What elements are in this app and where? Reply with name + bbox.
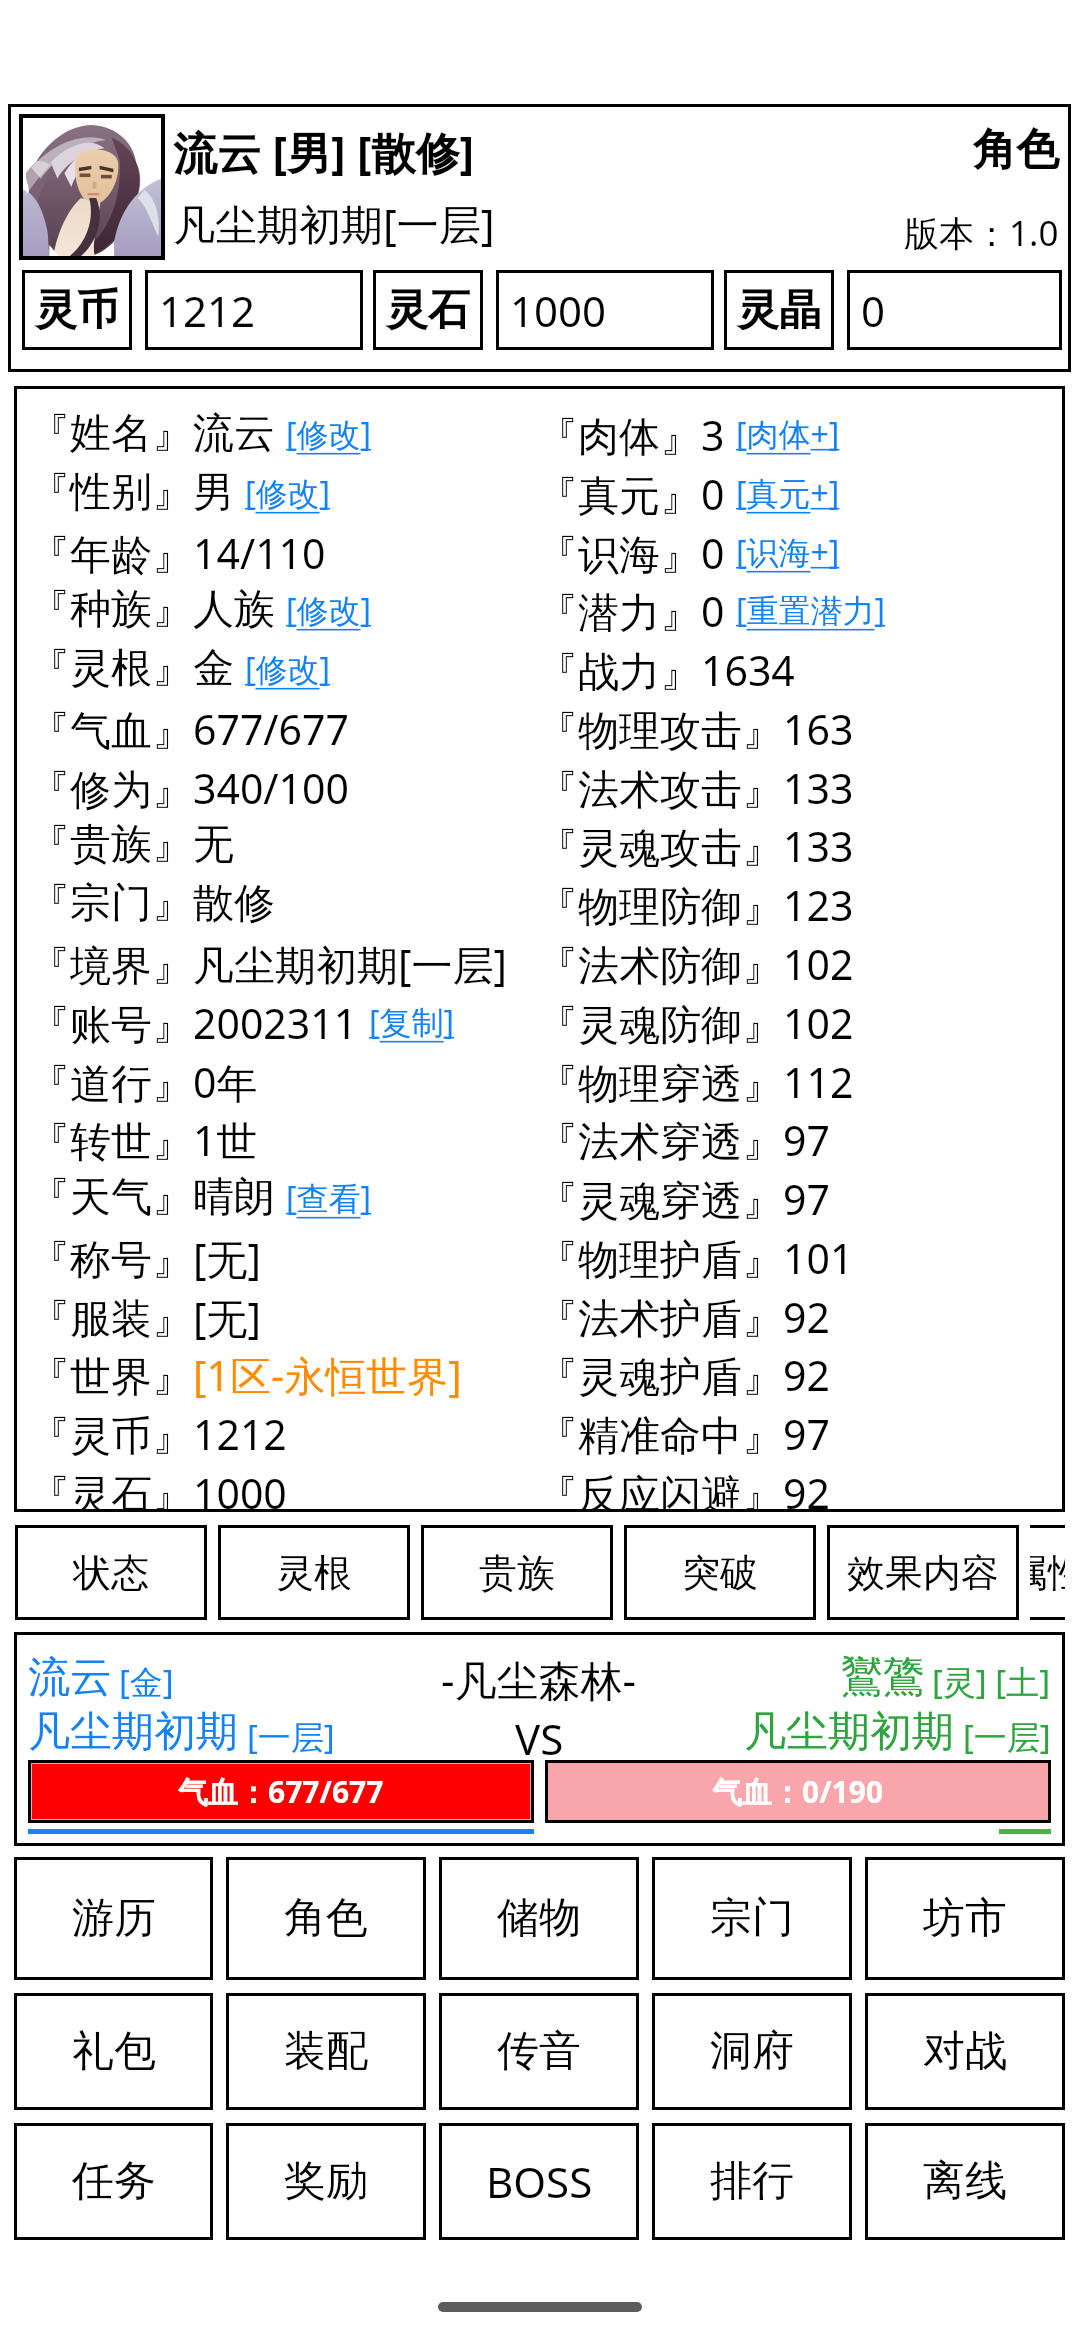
staticText: [一层] [247,1714,335,1759]
button[interactable]: [修改] [245,647,331,691]
staticText: 『物理穿透』112 [537,1054,854,1108]
staticText: 突破 [682,1549,758,1597]
staticText: [修改] [245,471,331,515]
staticText: 气血：677/677 [178,1771,384,1812]
button[interactable]: 贵族 [421,1525,613,1620]
button[interactable]: 储物 [439,1857,639,1980]
staticText: 版本：1.0 [904,209,1059,257]
staticText: 『精准命中』97 [537,1406,830,1460]
button[interactable]: [修改] [286,412,372,456]
staticText: 『灵币』1212 [29,1406,287,1460]
staticText: 『服装』[无] [29,1289,261,1343]
staticText: 洞府 [710,2025,794,2078]
staticText: 坊市 [923,1892,1007,1945]
button[interactable]: 坊市 [865,1857,1065,1980]
staticText: 『识海』0 [537,525,725,579]
button[interactable]: 游历 [14,1857,213,1980]
staticText: 『法术护盾』92 [537,1289,830,1343]
button[interactable]: 灵根 [218,1525,410,1620]
staticText: 『潜力』0 [537,583,725,637]
button[interactable]: [复制] [369,1000,455,1044]
staticText: [复制] [369,1000,455,1044]
staticText: 『法术攻击』133 [537,760,854,814]
staticText: 任务 [72,2155,156,2208]
button[interactable]: [真元+] [736,471,840,515]
button[interactable]: [肉体+] [736,412,840,456]
staticText: 『修为』340/100 [29,760,349,814]
button[interactable]: 对战 [865,1993,1065,2110]
button[interactable]: 状态 [15,1525,207,1620]
staticText: 『转世』1世 [29,1112,258,1166]
staticText: 『天气』晴朗 [29,1172,275,1224]
staticText: 『贵族』无 [29,819,234,871]
staticText: [金] [119,1659,174,1704]
button[interactable]: 效果内容 [827,1525,1019,1620]
button[interactable]: 装配 [226,1993,426,2110]
button[interactable]: 角色 [226,1857,426,1980]
staticText: 『世界』[1区-永恒世界] [29,1347,462,1401]
staticText: 礼包 [72,2025,156,2078]
staticText: [识海+] [736,530,840,574]
button[interactable]: [查看] [286,1176,372,1220]
button[interactable]: 传音 [439,1993,639,2110]
staticText: 流云 [28,1651,112,1704]
staticText: [修改] [286,588,372,632]
button[interactable]: 宗门 [652,1857,852,1980]
button[interactable]: 离线 [865,2123,1065,2240]
staticText: 『灵魂攻击』133 [537,818,854,872]
staticText: 『称号』[无] [29,1230,261,1284]
button[interactable]: [修改] [245,471,331,515]
button[interactable]: 洞府 [652,1993,852,2110]
staticText: 『年龄』14/110 [29,525,326,579]
staticText: 『物理护盾』101 [537,1230,854,1284]
staticText: 角色 [284,1892,368,1945]
staticText: 『灵魂护盾』92 [537,1347,830,1401]
staticText: [查看] [286,1176,372,1220]
button[interactable]: 属性 [1030,1525,1065,1620]
button[interactable]: [重置潜力] [736,588,886,632]
staticText: 宗门 [710,1892,794,1945]
staticText: 『种族』人族 [29,584,275,636]
button[interactable]: [识海+] [736,530,840,574]
staticText: 鸑鷟 [841,1651,925,1704]
staticText: 『真元』0 [537,466,725,520]
button[interactable]: 任务 [14,2123,213,2240]
staticText: 游历 [72,1892,156,1945]
staticText: 流云 [男] [散修] [173,122,475,182]
staticText: 『肉体』3 [537,407,725,461]
button[interactable]: 礼包 [14,1993,213,2110]
staticText: 排行 [710,2155,794,2208]
button[interactable]: [修改] [286,588,372,632]
staticText: 『物理攻击』163 [537,701,854,755]
button[interactable]: BOSS [439,2123,639,2240]
staticText: 属性 [1030,1549,1065,1597]
staticText: 『账号』2002311 [29,995,358,1049]
staticText: 凡尘期初期 [744,1706,954,1759]
staticText: [重置潜力] [736,588,886,632]
button[interactable]: 奖励 [226,2123,426,2240]
staticText: [一层] [963,1714,1051,1759]
staticText: 装配 [284,2025,368,2078]
staticText: 『物理防御』123 [537,877,854,931]
staticText: 气血：0/190 [712,1771,884,1812]
staticText: 『道行』0年 [29,1054,258,1108]
staticText: 对战 [923,2025,1007,2078]
staticText: 『姓名』流云 [29,408,275,460]
staticText: 『反应闪避』92 [537,1465,830,1512]
staticText: 『境界』凡尘期初期[一层] [29,936,507,990]
staticText: 『宗门』散修 [29,878,275,930]
staticText: 『灵魂防御』102 [537,995,854,1049]
staticText: 『灵石』1000 [29,1465,287,1512]
staticText: 奖励 [284,2155,368,2208]
staticText: 1000 [510,282,607,339]
staticText: 凡尘期初期[一层] [173,195,495,252]
staticText: 『战力』1634 [537,642,795,696]
staticText: 『性别』男 [29,467,234,519]
staticText: 『灵根』金 [29,643,234,695]
button[interactable]: 突破 [624,1525,816,1620]
staticText: 效果内容 [847,1549,999,1597]
staticText: 角色 [973,123,1059,177]
staticText: [肉体+] [736,412,840,456]
staticText: 传音 [497,2025,581,2078]
button[interactable]: 排行 [652,2123,852,2240]
